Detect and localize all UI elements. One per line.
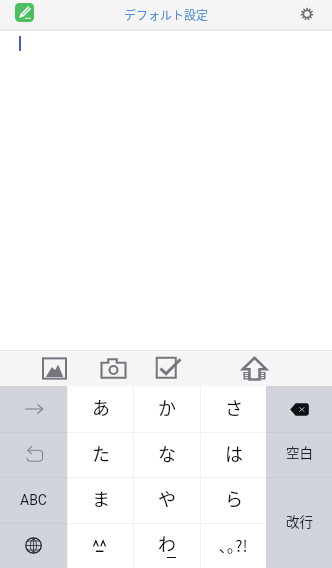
staticText: 空白 [286,442,313,462]
staticText: 改行 [286,511,313,531]
staticText: ま [92,485,110,511]
button[interactable]: Home [234,350,274,386]
button[interactable]: ら [200,477,267,523]
button[interactable]: あ [67,386,134,432]
staticText: や [158,485,176,511]
staticText: デフォルト設定 [124,6,209,23]
button[interactable]: ABC [0,477,67,523]
button[interactable]: Settings [295,2,319,26]
staticText: か [158,394,176,420]
button[interactable]: た [67,432,134,478]
button[interactable]: か [133,386,200,432]
button[interactable]: Undo [0,432,67,478]
staticText: さ [225,394,243,420]
button[interactable]: わ [133,523,200,568]
button[interactable]: さ [200,386,267,432]
staticText: ､｡?! [219,533,248,556]
button[interactable]: 改行 [266,477,332,568]
staticText: な [158,440,176,466]
button[interactable]: Backspace [266,386,332,432]
staticText: あ [92,394,110,420]
staticText: ら [225,485,243,511]
button[interactable] [67,523,134,568]
button[interactable]: Simeji [15,3,34,22]
button[interactable]: Notes [148,350,188,386]
button[interactable]: な [133,432,200,478]
button[interactable]: Stickers [34,350,74,386]
staticText: は [225,440,243,466]
staticText: た [92,440,110,466]
button[interactable]: ま [67,477,134,523]
button[interactable]: Next [0,386,67,432]
button[interactable]: 空白 [266,432,332,478]
staticText: ABC [20,492,47,508]
button[interactable]: Switch language [0,523,67,568]
staticText: わ [158,530,176,556]
button[interactable]: Camera [93,350,133,386]
button[interactable]: ､｡?! [200,523,267,568]
button[interactable]: は [200,432,267,478]
button[interactable]: や [133,477,200,523]
